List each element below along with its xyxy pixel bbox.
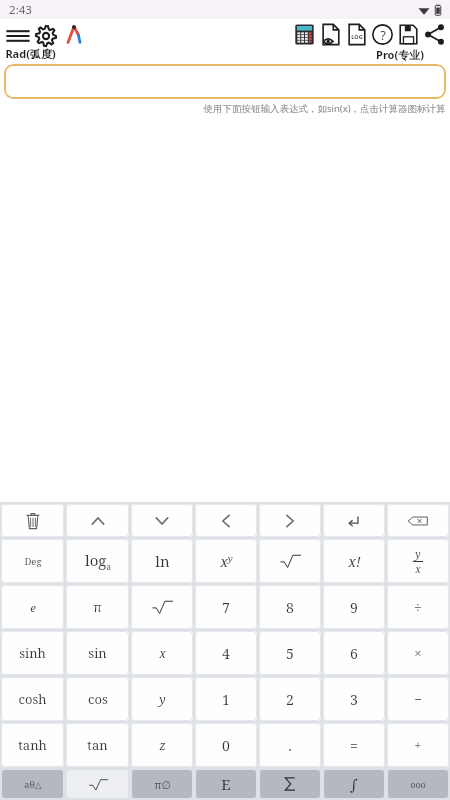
staticText: Deg	[24, 555, 42, 568]
button[interactable]: π	[66, 585, 129, 629]
staticText: 4	[222, 644, 230, 663]
button[interactable]: tanh	[1, 723, 64, 767]
staticText: sinh	[19, 644, 46, 662]
button[interactable]: Log	[345, 23, 368, 46]
button[interactable]: More	[388, 770, 448, 798]
staticText: .	[288, 736, 292, 755]
button[interactable]: z	[131, 723, 193, 767]
button[interactable]	[1, 504, 64, 537]
button[interactable]: Settings	[34, 24, 58, 48]
button[interactable]: x!	[323, 539, 385, 583]
button[interactable]: 1	[195, 677, 257, 721]
staticText: +	[414, 736, 422, 754]
button[interactable]: +	[387, 723, 449, 767]
button[interactable]: sinh	[1, 631, 64, 675]
staticText: −	[414, 690, 422, 708]
staticText: E	[221, 774, 231, 794]
button[interactable]: Deg	[1, 539, 64, 583]
staticText: π	[93, 598, 102, 616]
button[interactable]: ln	[131, 539, 193, 583]
button[interactable]: y	[387, 539, 449, 583]
staticText: z	[159, 737, 166, 753]
staticText: sin	[88, 644, 107, 662]
staticText: cosh	[18, 690, 47, 708]
button[interactable]: 9	[323, 585, 385, 629]
button[interactable]: Preview	[319, 23, 342, 46]
button[interactable]: y	[131, 677, 193, 721]
button[interactable]: e	[1, 585, 64, 629]
staticText: 2:43	[9, 2, 32, 18]
button[interactable]: Calculate	[293, 23, 316, 46]
button[interactable]: sin	[66, 631, 129, 675]
button[interactable]	[259, 539, 321, 583]
button[interactable]: 8	[259, 585, 321, 629]
staticText: 使用下面按钮输入表达式，如sin(x)，点击计算器图标计算	[203, 102, 446, 115]
staticText: 8	[286, 598, 294, 617]
button[interactable]: =	[323, 723, 385, 767]
staticText: x!	[348, 552, 361, 571]
staticText: tanh	[18, 736, 47, 754]
staticText: 0	[222, 736, 230, 755]
staticText: 3	[350, 690, 358, 709]
staticText: 1	[222, 690, 230, 709]
button[interactable]	[195, 504, 257, 537]
staticText: cos	[88, 690, 108, 708]
button[interactable]: Sum	[260, 770, 320, 798]
button[interactable]: .	[259, 723, 321, 767]
button[interactable]	[387, 504, 449, 537]
staticText: ∫	[350, 776, 358, 793]
button[interactable]: 4	[195, 631, 257, 675]
button[interactable]: cos	[66, 677, 129, 721]
button[interactable]: Integral	[324, 770, 384, 798]
button[interactable]: 2	[259, 677, 321, 721]
staticText: LOG	[351, 33, 363, 40]
button[interactable]: Menu	[6, 24, 30, 48]
staticText: x	[159, 645, 166, 661]
button[interactable]	[4, 64, 446, 99]
button[interactable]: cosh	[1, 677, 64, 721]
button[interactable]: 6	[323, 631, 385, 675]
button[interactable]: x	[131, 631, 193, 675]
staticText: e	[30, 600, 36, 615]
staticText: 9	[350, 598, 358, 617]
staticText: ?	[380, 26, 386, 44]
button[interactable]: −	[387, 677, 449, 721]
staticText: ooo	[410, 778, 426, 790]
staticText: ×	[414, 644, 422, 662]
staticText: Pro(专业)	[376, 47, 424, 62]
button[interactable]: Roots	[67, 770, 128, 798]
button[interactable]: 5	[259, 631, 321, 675]
staticText: ln	[155, 551, 170, 571]
button[interactable]: Share	[423, 23, 446, 46]
button[interactable]: Angle unit	[64, 24, 84, 44]
button[interactable]: Save	[397, 23, 420, 46]
button[interactable]	[131, 504, 193, 537]
staticText: ÷	[414, 598, 422, 617]
button[interactable]: xy	[195, 539, 257, 583]
button[interactable]	[66, 504, 129, 537]
staticText: =	[350, 736, 358, 755]
button[interactable]: 0	[195, 723, 257, 767]
staticText: Rad(弧度)	[5, 46, 56, 61]
staticText: x	[415, 562, 421, 576]
staticText: π∅	[154, 777, 171, 792]
button[interactable]: 3	[323, 677, 385, 721]
staticText: 2	[286, 690, 294, 709]
button[interactable]: ÷	[387, 585, 449, 629]
staticText: loga	[85, 550, 111, 573]
button[interactable]	[323, 504, 385, 537]
button[interactable]: Greek letters	[2, 770, 63, 798]
button[interactable]: loga	[66, 539, 129, 583]
button[interactable]: Help	[371, 23, 394, 46]
staticText: aθ△	[24, 778, 42, 790]
button[interactable]: ×	[387, 631, 449, 675]
staticText: tan	[87, 736, 108, 754]
button[interactable]: tan	[66, 723, 129, 767]
button[interactable]: Exponent	[196, 770, 256, 798]
button[interactable]	[131, 585, 193, 629]
staticText: 6	[350, 644, 358, 663]
staticText: 5	[286, 644, 294, 663]
button[interactable]: Constants	[132, 770, 192, 798]
button[interactable]	[259, 504, 321, 537]
button[interactable]: 7	[195, 585, 257, 629]
